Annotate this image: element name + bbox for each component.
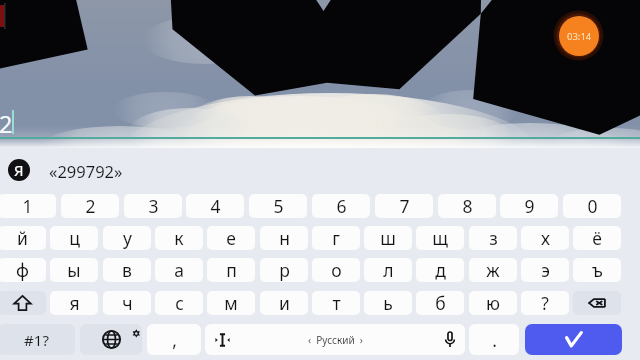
staticText: д	[435, 258, 446, 282]
staticText: 0	[587, 194, 598, 218]
button[interactable]: #1?	[0, 324, 75, 355]
staticText: 6	[336, 194, 347, 218]
button[interactable]: 1	[0, 194, 56, 218]
button[interactable]: 6	[312, 194, 370, 218]
staticText: ‹ Русский ›	[308, 333, 363, 347]
staticText: р	[279, 258, 290, 282]
button[interactable]: е	[207, 226, 255, 250]
staticText: ъ	[592, 258, 603, 282]
staticText: ц	[69, 226, 80, 250]
button[interactable]: ю	[469, 291, 517, 315]
button[interactable]: ы	[50, 258, 98, 282]
button[interactable]: 3	[124, 194, 182, 218]
button[interactable]: 5	[249, 194, 307, 218]
button[interactable]: Backspace	[573, 291, 621, 315]
button[interactable]: к	[155, 226, 203, 250]
button[interactable]: ч	[103, 291, 151, 315]
staticText: 1	[22, 194, 33, 218]
staticText: у	[123, 226, 132, 250]
staticText: «299792»	[49, 160, 123, 182]
button[interactable]: ?	[521, 291, 569, 315]
staticText: е	[226, 226, 236, 250]
staticText: п	[226, 258, 237, 282]
staticText: ш	[380, 226, 396, 250]
button[interactable]: х	[521, 226, 569, 250]
staticText: #1?	[24, 330, 49, 350]
button[interactable]: Switch language	[80, 324, 142, 355]
staticText: ё	[592, 226, 602, 250]
button[interactable]: ж	[469, 258, 517, 282]
button[interactable]: б	[416, 291, 464, 315]
button[interactable]: г	[312, 226, 360, 250]
button[interactable]: з	[469, 226, 517, 250]
button[interactable]: п	[207, 258, 255, 282]
button[interactable]: р	[260, 258, 308, 282]
button[interactable]: я	[50, 291, 98, 315]
button[interactable]: м	[207, 291, 255, 315]
staticText: в	[122, 258, 132, 282]
button[interactable]: э	[521, 258, 569, 282]
staticText: ,	[172, 328, 177, 352]
button[interactable]: 7	[375, 194, 433, 218]
staticText: б	[435, 291, 446, 315]
button[interactable]: т	[312, 291, 360, 315]
staticText: а	[174, 258, 184, 282]
staticText: ь	[383, 291, 393, 315]
button[interactable]: Recording timer	[559, 16, 599, 56]
button[interactable]: ь	[364, 291, 412, 315]
staticText: н	[279, 226, 290, 250]
button[interactable]: в	[103, 258, 151, 282]
staticText: Я	[14, 160, 24, 180]
staticText: л	[383, 258, 394, 282]
staticText: й	[17, 226, 28, 250]
staticText: 03:14	[567, 30, 592, 43]
button[interactable]: ш	[364, 226, 412, 250]
button[interactable]: о	[312, 258, 360, 282]
staticText: т	[332, 291, 341, 315]
staticText: ?	[541, 291, 549, 315]
staticText: и	[279, 291, 290, 315]
staticText: я	[69, 291, 80, 315]
staticText: 7	[399, 194, 410, 218]
button[interactable]: д	[416, 258, 464, 282]
button[interactable]: н	[260, 226, 308, 250]
staticText: к	[174, 226, 184, 250]
staticText: ю	[486, 291, 500, 315]
staticText: 5	[273, 194, 284, 218]
button[interactable]: л	[364, 258, 412, 282]
staticText: ж	[486, 258, 500, 282]
button[interactable]: щ	[416, 226, 464, 250]
staticText: г	[332, 226, 340, 250]
button[interactable]: 8	[438, 194, 496, 218]
button[interactable]: у	[103, 226, 151, 250]
staticText: 3	[148, 194, 159, 218]
button[interactable]: ъ	[573, 258, 621, 282]
button[interactable]: и	[260, 291, 308, 315]
button[interactable]: а	[155, 258, 203, 282]
staticText: .	[492, 328, 497, 352]
staticText: 4	[210, 194, 221, 218]
button[interactable]: ,	[147, 324, 201, 355]
staticText: с	[175, 291, 184, 315]
button[interactable]: Shift	[0, 291, 46, 315]
staticText: 9	[524, 194, 535, 218]
button[interactable]: й	[0, 226, 46, 250]
button[interactable]: Я	[0, 148, 640, 192]
button[interactable]: 0	[563, 194, 621, 218]
button[interactable]: ‹ Русский ›	[205, 324, 465, 355]
button[interactable]: ё	[573, 226, 621, 250]
staticText: 2	[0, 108, 13, 140]
staticText: э	[541, 258, 550, 282]
staticText: х	[541, 226, 550, 250]
button[interactable]: .	[469, 324, 519, 355]
staticText: 8	[462, 194, 473, 218]
button[interactable]: ф	[0, 258, 46, 282]
button[interactable]: ц	[50, 226, 98, 250]
button[interactable]: 4	[186, 194, 244, 218]
button[interactable]: 2	[61, 194, 119, 218]
staticText: 2	[85, 194, 96, 218]
button[interactable]: с	[155, 291, 203, 315]
button[interactable]: Enter	[525, 324, 622, 355]
staticText: м	[224, 291, 238, 315]
button[interactable]: 9	[500, 194, 558, 218]
